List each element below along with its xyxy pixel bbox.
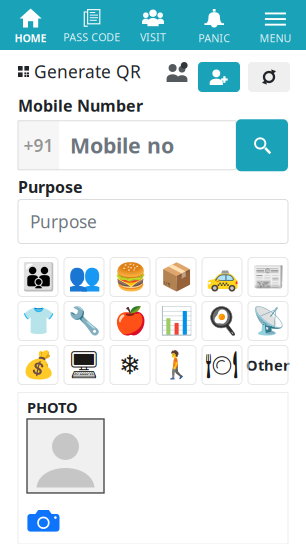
staticText: PASS CODE	[63, 30, 120, 44]
button[interactable]: Visitor list	[166, 53, 188, 82]
button[interactable]: 💰	[18, 345, 58, 384]
button[interactable]: MENU	[245, 0, 306, 50]
button[interactable]: 👪	[18, 257, 58, 296]
staticText: Purpose	[30, 210, 97, 233]
button[interactable]: 🖥	[64, 345, 104, 384]
staticText: 🖥	[67, 350, 101, 380]
staticText: 🍎	[113, 306, 146, 336]
staticText: +91	[23, 134, 53, 157]
button[interactable]: PANIC	[184, 0, 245, 50]
button[interactable]: 👕	[18, 301, 58, 340]
staticText: 📊	[159, 306, 192, 336]
staticText: MENU	[259, 31, 291, 45]
staticText: 🍽	[205, 350, 239, 380]
staticText: Other	[246, 355, 290, 375]
staticText: VISIT	[140, 30, 166, 44]
staticText: 🚶	[159, 350, 192, 380]
staticText: 📰	[251, 262, 284, 292]
button[interactable]: 🚕	[202, 257, 242, 296]
button[interactable]: Take photo	[27, 509, 60, 532]
staticText: HOME	[15, 31, 47, 45]
button[interactable]: 🍎	[110, 301, 150, 340]
button[interactable]: ❄	[110, 345, 150, 384]
button[interactable]: Add visitor	[198, 53, 240, 92]
staticText: 📡	[251, 306, 284, 336]
staticText: 👥	[67, 262, 100, 292]
button[interactable]: PASS CODE	[61, 0, 122, 50]
staticText: PHOTO	[27, 397, 78, 417]
button[interactable]: 📡	[248, 301, 288, 340]
staticText: Mobile no	[70, 131, 174, 159]
button[interactable]: Search	[236, 119, 288, 171]
button[interactable]: Refresh	[248, 53, 290, 92]
staticText: 🍳	[205, 306, 238, 336]
button[interactable]: 📊	[156, 301, 196, 340]
staticText: Purpose	[18, 176, 83, 197]
staticText: 📦	[159, 262, 192, 292]
staticText: 👕	[21, 306, 54, 336]
button[interactable]: 🚶	[156, 345, 196, 384]
button[interactable]: Generate QR	[18, 53, 141, 83]
button[interactable]: 🔧	[64, 301, 104, 340]
staticText: 🔧	[67, 306, 100, 336]
button[interactable]: 📰	[248, 257, 288, 296]
staticText: 👪	[21, 262, 54, 292]
button[interactable]: 🍽	[202, 345, 242, 384]
staticText: ❄	[119, 350, 141, 380]
button[interactable]: 🍔	[110, 257, 150, 296]
staticText: 💰	[21, 350, 54, 380]
button[interactable]: VISIT	[122, 0, 184, 50]
button[interactable]: 📦	[156, 257, 196, 296]
button[interactable]: Other	[248, 345, 288, 384]
staticText: PANIC	[198, 31, 230, 45]
staticText: Mobile Number	[18, 95, 143, 116]
staticText: Generate QR	[34, 60, 141, 83]
button[interactable]: HOME	[0, 0, 61, 50]
button[interactable]: 🍳	[202, 301, 242, 340]
staticText: 🚕	[205, 262, 238, 292]
button[interactable]: 👥	[64, 257, 104, 296]
staticText: 🍔	[113, 262, 146, 292]
